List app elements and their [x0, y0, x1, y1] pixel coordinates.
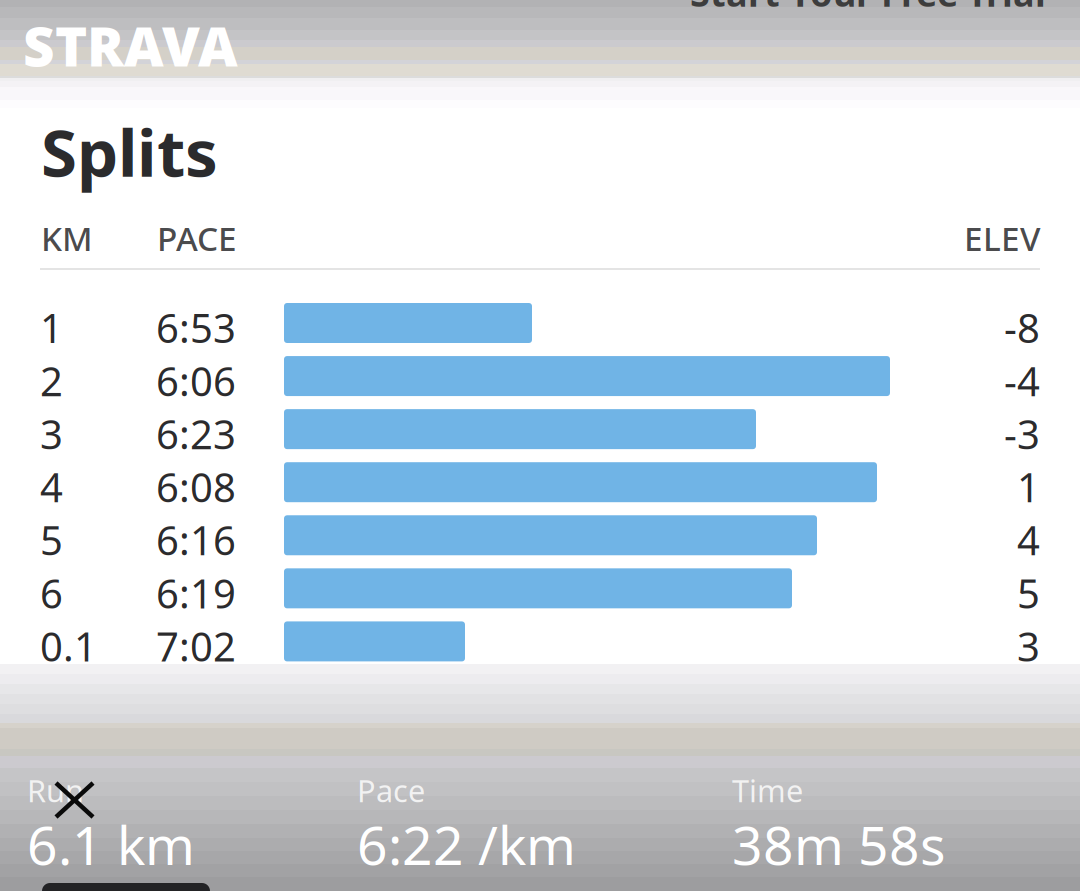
- staticText: 6:16: [156, 513, 236, 566]
- staticText: Time: [732, 770, 803, 811]
- staticText: KM: [41, 216, 93, 260]
- staticText: 4: [1017, 513, 1040, 566]
- staticText: -8: [1004, 301, 1040, 354]
- staticText: ELEV: [964, 216, 1041, 260]
- staticText: 3: [1017, 619, 1040, 672]
- staticText: Pace: [357, 770, 425, 811]
- staticText: Splits: [41, 108, 218, 195]
- staticText: 0.1: [40, 619, 97, 672]
- staticText: 6:19: [156, 566, 236, 619]
- staticText: 1: [40, 301, 63, 354]
- staticText: 6:53: [156, 301, 236, 354]
- button[interactable]: Close: [46, 773, 102, 827]
- staticText: 3: [40, 407, 63, 460]
- staticText: 6:22 /km: [357, 809, 576, 880]
- staticText: -3: [1004, 407, 1040, 460]
- staticText: PACE: [157, 216, 237, 260]
- staticText: -4: [1004, 354, 1040, 407]
- staticText: 38m 58s: [732, 809, 946, 880]
- staticText: 6:08: [156, 460, 236, 513]
- staticText: 6.1 km: [27, 809, 195, 880]
- staticText: 4: [40, 460, 63, 513]
- staticText: 6: [40, 566, 63, 619]
- staticText: 5: [40, 513, 63, 566]
- staticText: STRAVA: [23, 9, 238, 82]
- staticText: 7:02: [156, 619, 236, 672]
- staticText: Run: [27, 770, 84, 811]
- staticText: 1: [1017, 460, 1040, 513]
- staticText: Start Your Free Trial: [690, 0, 1046, 17]
- staticText: 2: [40, 354, 63, 407]
- staticText: 6:23: [156, 407, 236, 460]
- button[interactable]: Strava: [0, 0, 254, 92]
- staticText: 6:06: [156, 354, 236, 407]
- staticText: 5: [1017, 566, 1040, 619]
